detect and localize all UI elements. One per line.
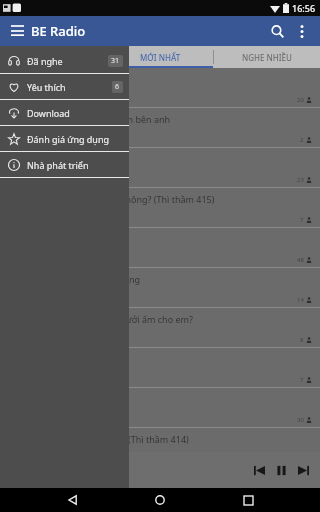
staticText: 14 [297, 296, 304, 304]
button[interactable]: Search [264, 18, 290, 44]
staticText: 2 [300, 136, 304, 144]
staticText: 7 [300, 376, 304, 384]
button[interactable]: MỚI NHẤT [107, 46, 213, 68]
staticText: 31 [111, 56, 120, 66]
staticText: 8 [300, 336, 304, 344]
staticText: Chúng ta có thể yêu được không? (Thì thầ… [10, 193, 215, 205]
button[interactable]: Previous [250, 461, 268, 479]
staticText: Yêu thích [27, 81, 66, 93]
button[interactable]: Đã nghe [0, 48, 129, 73]
staticText: Mùa đông lạnh, anh có về sưởi ấm cho em? [10, 313, 193, 325]
staticText: DANH MỤC [31, 52, 75, 63]
button[interactable]: 30 [0, 388, 320, 428]
staticText: 30 [297, 416, 304, 424]
button[interactable]: Nhà phát triển [0, 152, 129, 177]
staticText: Download [27, 107, 70, 119]
staticText: 20 [297, 96, 304, 104]
staticText: 7 [300, 216, 304, 224]
button[interactable]: Yêu thích [0, 74, 129, 99]
button[interactable]: Em mặc váy cưới và chạy đến bên anh [0, 108, 320, 148]
staticText: Nhà phát triển [27, 159, 89, 171]
staticText: 6 [115, 82, 120, 92]
button[interactable]: 48 [0, 228, 320, 268]
staticText: Đã nghe [27, 55, 63, 67]
button[interactable]: 23 [0, 148, 320, 188]
button[interactable]: Download [0, 100, 129, 125]
staticText: 23 [297, 176, 304, 184]
staticText: 48 [297, 256, 304, 264]
button[interactable]: Chúng ta có thể yêu được không? (Thì thầ… [0, 188, 320, 228]
button[interactable]: NGHE NHIỀU [214, 46, 320, 68]
button[interactable]: 20 [0, 68, 320, 108]
button[interactable]: Đánh giá ứng dụng [0, 126, 129, 151]
staticText: Đánh giá ứng dụng [27, 133, 110, 145]
button[interactable]: Recents [233, 488, 263, 512]
staticText: Yêu em thật chậm anh nhé! (Thì thầm 414) [10, 433, 189, 445]
staticText: Một mình trên suốt con đường [10, 273, 140, 285]
button[interactable]: Mùa đông lạnh, anh có về sưởi ấm cho em? [0, 308, 320, 348]
staticText: Em mặc váy cưới và chạy đến bên anh [10, 113, 171, 125]
staticText: MỚI NHẤT [140, 52, 181, 63]
staticText: NGHE NHIỀU [242, 52, 292, 63]
button[interactable]: Home [145, 488, 175, 512]
button[interactable]: Pause [272, 461, 290, 479]
button[interactable]: Next [294, 461, 312, 479]
button[interactable]: DANH MỤC [0, 46, 106, 68]
button[interactable]: Open navigation drawer [6, 20, 28, 42]
button[interactable]: Một mình trên suốt con đường [0, 268, 320, 308]
staticText: BE Radio [31, 22, 86, 40]
button[interactable]: More options [290, 19, 314, 43]
button[interactable]: Yêu em thật chậm anh nhé! (Thì thầm 414) [0, 428, 320, 468]
staticText: 16:56 [292, 2, 316, 14]
button[interactable]: Back [58, 488, 88, 512]
button[interactable]: Câu chuyện của đêm [0, 348, 320, 388]
